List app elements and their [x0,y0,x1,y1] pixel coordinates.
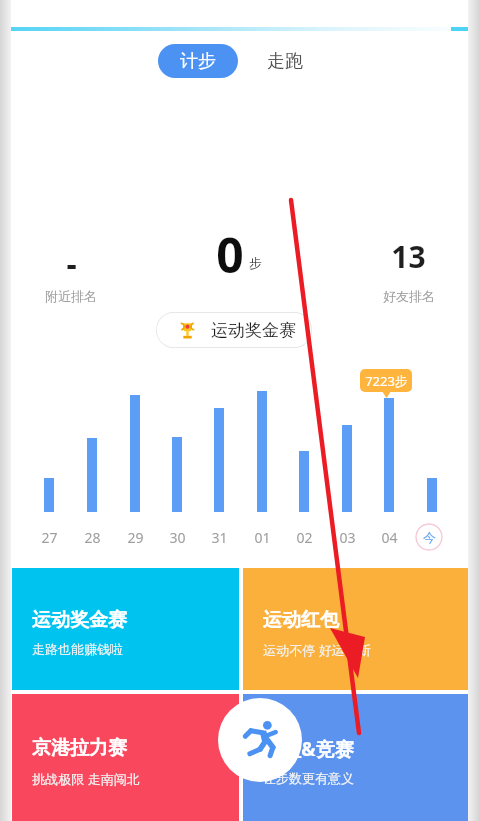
staticText: 附近排名 [45,288,97,304]
button[interactable]: 走跑 [249,44,321,78]
button[interactable]: 今天 [415,523,443,551]
staticText: 挑战极限 走南闯北 [32,770,140,788]
button[interactable]: - [11,232,131,312]
staticText: 让步数更有意义 [263,770,354,786]
staticText: 步 [249,255,262,271]
staticText: 02 [296,528,313,547]
staticText: 0 [216,222,244,287]
button[interactable]: 京港拉力赛 [12,694,239,821]
staticText: 30 [169,528,186,547]
button[interactable]: 运动红包 [243,568,468,690]
staticText: 好友排名 [383,288,435,304]
staticText: 走跑 [267,50,303,73]
staticText: 04 [381,528,398,547]
staticText: 01 [254,528,271,547]
button[interactable]: 公益&竞赛 [243,694,468,821]
staticText: 27 [41,528,58,547]
button[interactable]: 计步 [158,44,238,78]
button[interactable]: 运动奖金赛 [156,312,312,348]
staticText: 28 [84,528,101,547]
staticText: 7223步 [365,372,408,390]
staticText: 31 [211,528,228,547]
staticText: 29 [127,528,144,547]
staticText: 公益&竞赛 [263,736,354,762]
button[interactable]: 开始运动 [218,698,302,782]
staticText: 计步 [180,50,216,73]
staticText: 13 [391,236,426,277]
staticText: 走路也能赚钱啦 [32,641,123,657]
staticText: 运动不停 好运不断 [263,641,371,659]
button[interactable]: 13 [349,232,468,312]
staticText: 03 [339,528,356,547]
staticText: - [66,242,77,286]
staticText: 京港拉力赛 [32,736,127,760]
button[interactable]: 运动奖金赛 [12,568,239,690]
staticText: 运动奖金赛 [211,320,296,341]
staticText: 运动红包 [263,608,339,632]
staticText: 运动奖金赛 [32,608,127,632]
staticText: 今 [423,529,436,545]
